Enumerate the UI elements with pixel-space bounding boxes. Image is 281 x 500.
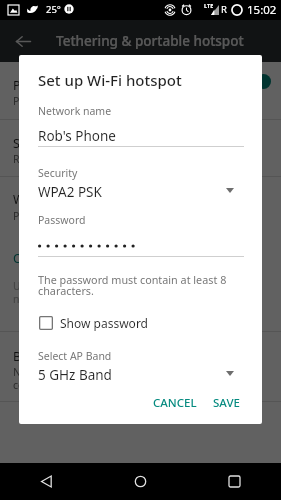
button[interactable]: Back [8, 26, 38, 56]
staticText: WPA2 PSK [38, 183, 102, 201]
button[interactable]: Recent apps [187, 463, 281, 500]
staticText: Rob's Phone [38, 127, 116, 145]
button[interactable]: USB tethering [0, 402, 281, 463]
button[interactable]: Back [0, 463, 93, 500]
staticText: Unavailable because the screen is not la… [13, 279, 179, 306]
staticText: R [221, 3, 227, 16]
button[interactable]: SAVE [205, 390, 248, 416]
staticText: Rob's Phone · WPA2 PSK portable Wi-Fi [13, 152, 203, 166]
staticText: Network name [38, 104, 112, 118]
staticText: Power saving keeps hotspot off [13, 209, 168, 223]
staticText: LTE [204, 2, 214, 9]
staticText: 25° [46, 3, 61, 16]
staticText: Wi-Fi hotspot auto shutoff [13, 191, 166, 208]
staticText: Not sharing this phone's internet connec… [13, 365, 176, 392]
staticText: SAVE [213, 395, 240, 411]
button[interactable]: Set up Wi-Fi hotspot [0, 120, 281, 177]
staticText: Set up Wi-Fi hotspot [38, 70, 182, 90]
staticText: 15:02 [247, 2, 277, 18]
staticText: Portable hotspot Rob's Phone active [13, 94, 191, 108]
staticText: Select AP Band [38, 349, 112, 363]
button[interactable]: CANCEL [145, 390, 205, 416]
staticText: Password [38, 213, 86, 227]
staticText: 5 GHz Band [38, 366, 112, 384]
staticText: Show password [60, 315, 148, 331]
button[interactable]: Bluetooth tethering [0, 332, 281, 402]
staticText: One-handed mode [13, 250, 124, 267]
button[interactable]: Portable Wi-Fi hotspot [0, 62, 281, 120]
staticText: Security [38, 166, 78, 180]
staticText: Tethering & portable hotspot [56, 32, 244, 50]
staticText: Set up Wi-Fi hotspot [13, 135, 131, 152]
staticText: Portable Wi-Fi hotspot [13, 77, 144, 94]
button[interactable]: Home [93, 463, 187, 500]
staticText: Bluetooth tethering [13, 348, 129, 365]
staticText: The password must contain at least 8 cha… [38, 272, 227, 298]
button[interactable]: Show password [36, 313, 148, 333]
staticText: CANCEL [153, 395, 197, 411]
